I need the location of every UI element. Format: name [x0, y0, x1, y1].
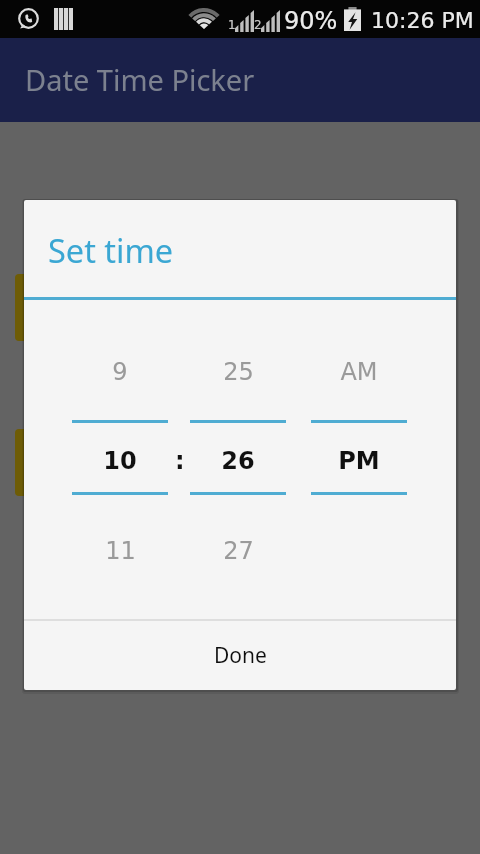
- staticText: 10: [103, 447, 137, 475]
- staticText: Date Time Picker: [25, 60, 255, 99]
- staticText: 10:26 PM: [371, 8, 474, 34]
- staticText: Set time: [48, 228, 174, 272]
- button[interactable]: 27: [190, 527, 286, 575]
- staticText: 27: [223, 537, 254, 565]
- button[interactable]: 25: [190, 348, 286, 396]
- button[interactable]: 9: [72, 348, 168, 396]
- staticText: 2: [254, 18, 262, 32]
- staticText: 26: [221, 447, 255, 475]
- button[interactable]: Date Time Picker: [0, 38, 480, 122]
- staticText: 90%: [284, 7, 338, 35]
- staticText: 9: [112, 358, 128, 386]
- staticText: PM: [338, 447, 380, 475]
- staticText: :: [175, 447, 185, 475]
- staticText: 1: [228, 18, 236, 32]
- staticText: 25: [223, 358, 254, 386]
- button[interactable]: 10: [72, 437, 168, 485]
- button[interactable]: Done: [24, 621, 456, 690]
- staticText: Done: [214, 641, 267, 670]
- staticText: 11: [105, 537, 136, 565]
- staticText: AM: [340, 358, 378, 386]
- button[interactable]: 26: [190, 437, 286, 485]
- button[interactable]: 11: [72, 527, 168, 575]
- button[interactable]: PM: [311, 437, 407, 485]
- button[interactable]: AM: [311, 348, 407, 396]
